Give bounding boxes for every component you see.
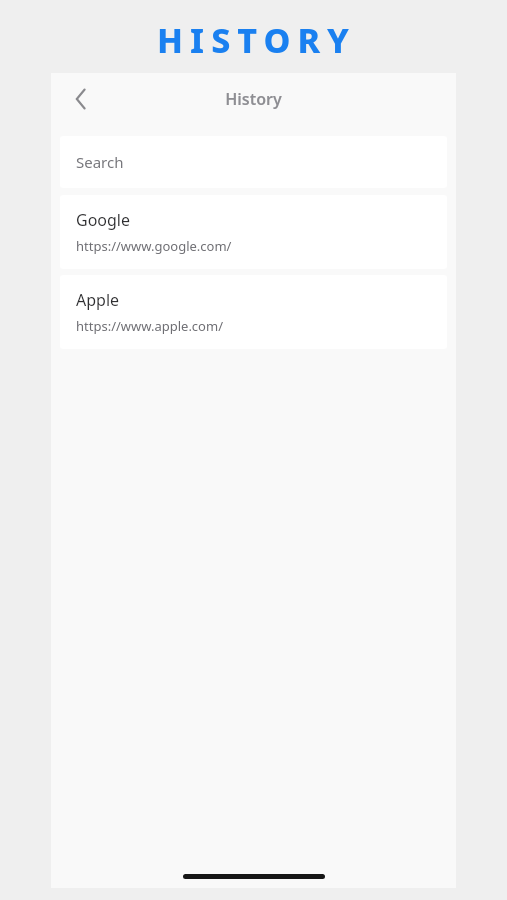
staticText: Apple [76,289,120,311]
staticText: https://www.google.com/ [76,237,232,255]
staticText: Search [76,152,124,172]
staticText: https://www.apple.com/ [76,317,223,335]
staticText: Google [76,209,131,231]
button[interactable]: Apple [60,275,447,349]
button[interactable]: Google [60,195,447,269]
staticText: History [225,88,282,110]
button[interactable]: Back [60,78,102,120]
button[interactable]: Search [60,136,447,188]
staticText: HISTORY [157,17,356,63]
